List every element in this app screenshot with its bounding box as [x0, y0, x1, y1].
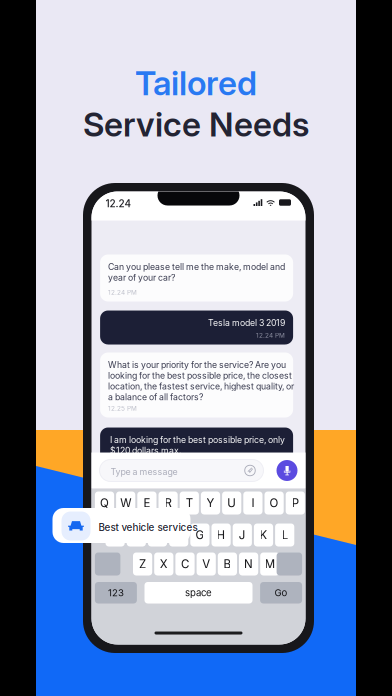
staticText: Q: [100, 496, 109, 510]
button[interactable]: M: [260, 552, 279, 575]
button[interactable]: D: [148, 523, 167, 546]
button[interactable]: Type a message: [99, 459, 263, 481]
button[interactable]: H: [211, 523, 231, 546]
staticText: 12.24: [105, 197, 131, 210]
staticText: Go: [275, 587, 288, 598]
staticText: E: [143, 496, 150, 510]
staticText: D: [153, 528, 161, 542]
staticText: 12.24 PM: [256, 458, 285, 466]
staticText: U: [227, 496, 236, 510]
staticText: Type a message: [110, 466, 177, 477]
button[interactable]: Y: [201, 491, 220, 514]
button[interactable]: G: [190, 523, 209, 546]
button[interactable]: I: [243, 491, 262, 514]
button[interactable]: X: [154, 552, 173, 575]
staticText: M: [265, 557, 275, 571]
staticText: F: [175, 528, 182, 542]
button[interactable]: U: [222, 491, 241, 514]
button[interactable]: Go: [260, 582, 302, 603]
staticText: P: [292, 496, 299, 510]
staticText: N: [244, 557, 253, 571]
staticText: W: [120, 496, 131, 510]
staticText: Can you please tell me the make, model a…: [108, 261, 285, 283]
button[interactable]: Shift: [95, 552, 120, 575]
button[interactable]: V: [197, 552, 216, 575]
button[interactable]: Best vehicle services: [52, 508, 190, 543]
button[interactable]: J: [233, 523, 252, 546]
button[interactable]: T: [180, 491, 199, 514]
button[interactable]: N: [239, 552, 258, 575]
button[interactable]: B: [218, 552, 237, 575]
staticText: 12.24 PM: [256, 331, 285, 339]
staticText: A: [111, 528, 119, 542]
button[interactable]: W: [116, 491, 135, 514]
staticText: Tailored: [135, 63, 257, 103]
staticText: G: [195, 528, 204, 542]
button[interactable]: O: [264, 491, 284, 514]
button[interactable]: R: [158, 491, 178, 514]
button[interactable]: Voice input: [276, 460, 297, 481]
button[interactable]: Shift: [277, 552, 302, 575]
staticText: Y: [206, 496, 214, 510]
staticText: I am looking for the best possible price…: [110, 434, 285, 456]
staticText: J: [239, 528, 246, 542]
staticText: Z: [139, 557, 146, 571]
staticText: R: [165, 496, 172, 510]
button[interactable]: S: [127, 523, 146, 546]
button[interactable]: A: [105, 523, 125, 546]
button[interactable]: K: [254, 523, 273, 546]
button[interactable]: F: [169, 523, 188, 546]
staticText: 12.25 PM: [108, 404, 137, 412]
staticText: K: [259, 528, 267, 542]
staticText: O: [270, 496, 279, 510]
button[interactable]: Z: [133, 552, 152, 575]
button[interactable]: C: [175, 552, 195, 575]
staticText: Tesla model 3 2019: [208, 317, 285, 328]
button[interactable]: L: [275, 523, 294, 546]
staticText: V: [202, 557, 210, 571]
staticText: C: [181, 557, 189, 571]
staticText: B: [223, 557, 231, 571]
staticText: X: [160, 557, 168, 571]
staticText: What is your priority for the service? A…: [108, 359, 294, 402]
button[interactable]: space: [144, 582, 252, 603]
staticText: H: [217, 528, 226, 542]
button[interactable]: P: [286, 491, 305, 514]
staticText: 123: [108, 587, 124, 598]
button[interactable]: Q: [95, 491, 114, 514]
staticText: T: [186, 496, 193, 510]
staticText: Service Needs: [83, 104, 309, 145]
button[interactable]: E: [137, 491, 156, 514]
staticText: 12.24 PM: [108, 288, 137, 296]
staticText: space: [185, 587, 212, 598]
button[interactable]: 123: [95, 582, 137, 603]
staticText: I: [251, 496, 254, 510]
staticText: S: [133, 528, 140, 542]
staticText: Best vehicle services: [98, 521, 197, 533]
staticText: L: [282, 528, 288, 542]
